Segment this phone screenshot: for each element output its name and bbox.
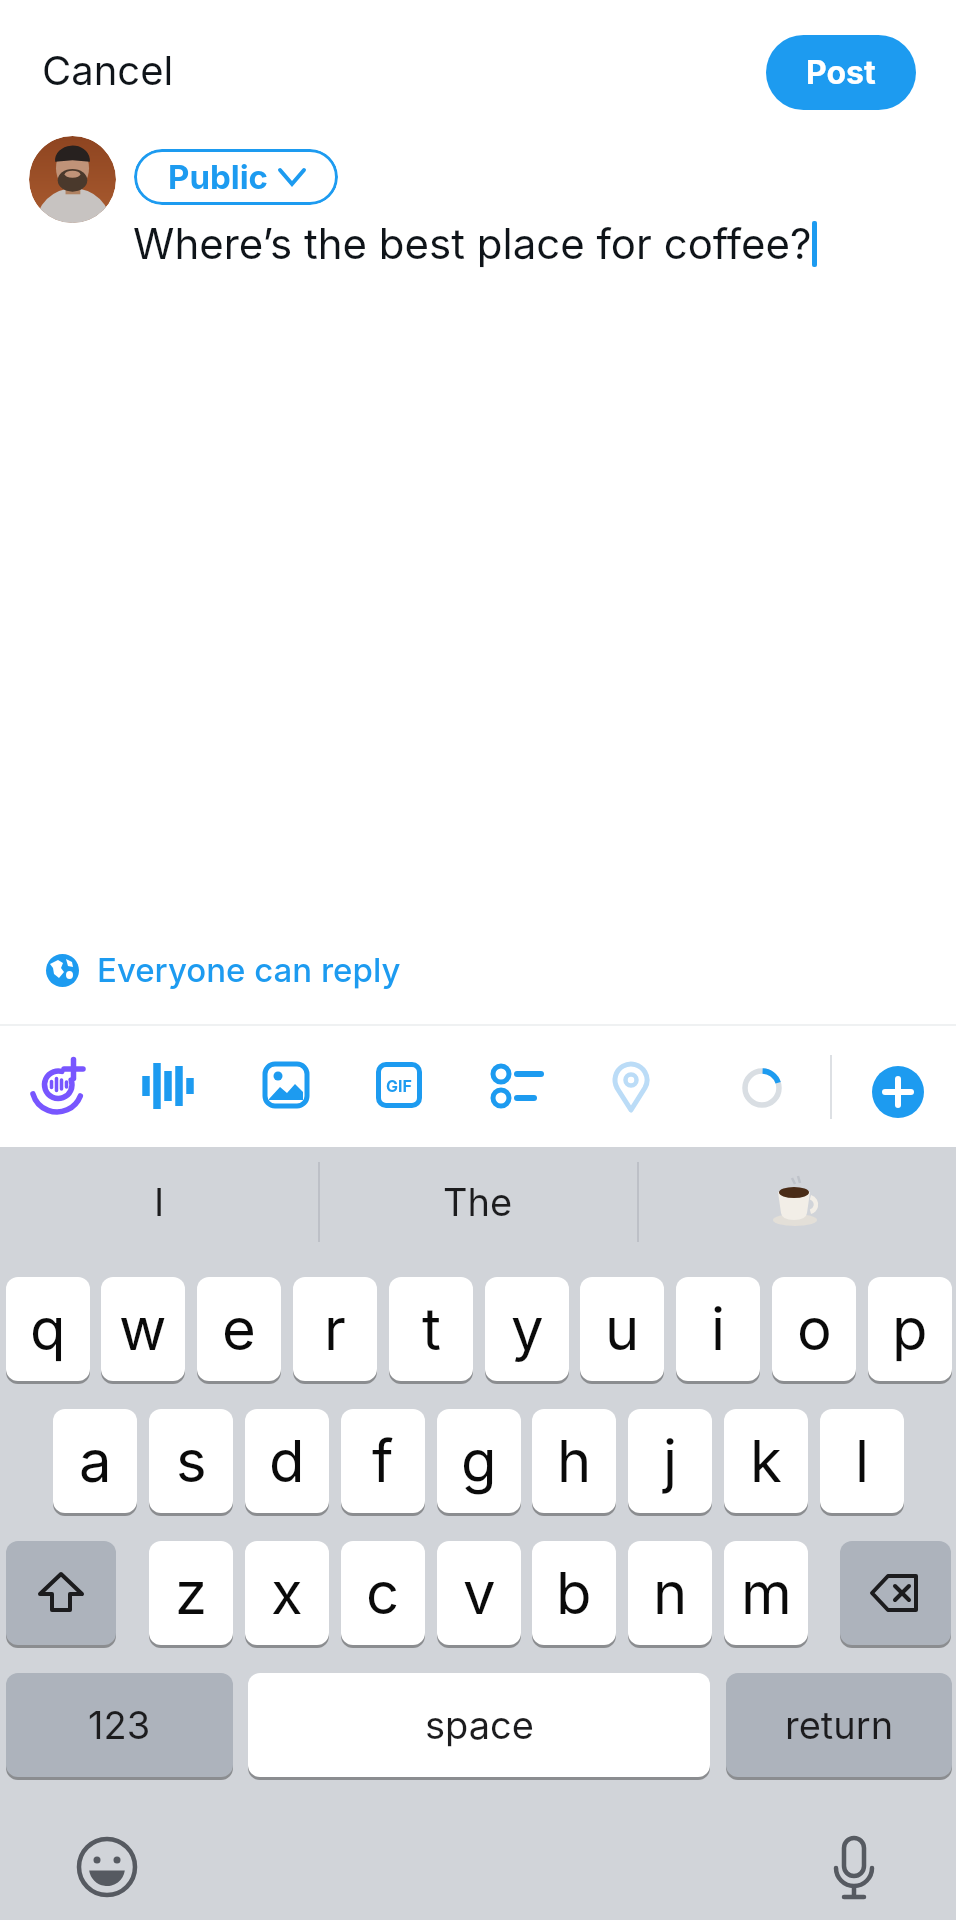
staticText: j [663, 1426, 678, 1496]
staticText: n [653, 1558, 688, 1628]
button[interactable]: x [245, 1541, 329, 1648]
staticText: w [119, 1294, 167, 1364]
button[interactable] [142, 1060, 198, 1116]
staticText: Everyone can reply [97, 950, 401, 990]
button[interactable]: return [726, 1673, 952, 1780]
button[interactable]: Public [134, 149, 338, 205]
button[interactable] [872, 1066, 924, 1118]
button[interactable] [29, 136, 116, 223]
staticText: l [855, 1426, 870, 1496]
staticText: y [511, 1294, 544, 1364]
button[interactable]: z [149, 1541, 233, 1648]
button[interactable]: i [676, 1277, 760, 1384]
button[interactable]: p [868, 1277, 952, 1384]
button[interactable]: f [341, 1409, 425, 1516]
button[interactable]: u [580, 1277, 664, 1384]
button[interactable]: GIF [376, 1062, 422, 1108]
button[interactable]: space [248, 1673, 710, 1780]
staticText: I [154, 1179, 165, 1225]
button[interactable] [263, 1062, 309, 1108]
staticText: g [461, 1426, 497, 1496]
button[interactable]: Everyone can reply [46, 950, 401, 990]
button[interactable]: j [628, 1409, 712, 1516]
button[interactable]: The [319, 1154, 637, 1250]
staticText: x [271, 1558, 303, 1628]
staticText: p [892, 1294, 928, 1364]
button[interactable]: c [341, 1541, 425, 1648]
button[interactable]: g [437, 1409, 521, 1516]
button[interactable]: w [101, 1277, 185, 1384]
staticText: s [176, 1426, 207, 1496]
staticText: f [372, 1426, 394, 1496]
button[interactable]: m [724, 1541, 808, 1648]
button[interactable]: d [245, 1409, 329, 1516]
staticText: return [785, 1702, 894, 1748]
staticText: z [175, 1558, 208, 1628]
button[interactable]: I [0, 1154, 318, 1250]
staticText: d [269, 1426, 305, 1496]
staticText: 123 [88, 1702, 151, 1748]
button[interactable]: a [53, 1409, 137, 1516]
staticText: v [463, 1558, 496, 1628]
button[interactable] [608, 1060, 654, 1114]
staticText: GIF [386, 1076, 412, 1095]
button[interactable]: h [532, 1409, 616, 1516]
staticText: Post [806, 53, 876, 92]
button[interactable]: e [197, 1277, 281, 1384]
button[interactable]: t [389, 1277, 473, 1384]
staticText: m [741, 1558, 792, 1628]
button[interactable]: Post [766, 35, 916, 110]
staticText: r [324, 1294, 346, 1364]
button[interactable]: n [628, 1541, 712, 1648]
staticText: b [556, 1558, 592, 1628]
button[interactable]: o [772, 1277, 856, 1384]
button[interactable] [76, 1836, 138, 1898]
button[interactable] [828, 1836, 880, 1906]
staticText: h [557, 1426, 592, 1496]
button[interactable] [638, 1154, 956, 1250]
staticText: i [711, 1294, 726, 1364]
staticText: space [425, 1702, 534, 1748]
staticText: q [30, 1294, 66, 1364]
button[interactable] [27, 1053, 91, 1117]
staticText: a [79, 1426, 112, 1496]
staticText: Where’s the best place for coffee? [133, 218, 812, 269]
button[interactable]: l [820, 1409, 904, 1516]
staticText: o [797, 1294, 832, 1364]
button[interactable]: q [6, 1277, 90, 1384]
staticText: k [750, 1426, 782, 1496]
button[interactable] [6, 1541, 116, 1648]
staticText: The [443, 1179, 513, 1225]
button[interactable] [489, 1062, 543, 1108]
staticText: t [422, 1294, 441, 1364]
staticText: e [222, 1294, 256, 1364]
button[interactable]: b [532, 1541, 616, 1648]
button[interactable]: k [724, 1409, 808, 1516]
staticText: c [366, 1558, 400, 1628]
staticText: u [605, 1294, 640, 1364]
staticText: Public [168, 157, 269, 197]
button[interactable] [840, 1541, 951, 1648]
button[interactable]: y [485, 1277, 569, 1384]
button[interactable]: s [149, 1409, 233, 1516]
button[interactable]: Cancel [42, 46, 174, 94]
button[interactable]: v [437, 1541, 521, 1648]
button[interactable]: r [293, 1277, 377, 1384]
button[interactable]: 123 [6, 1673, 233, 1780]
